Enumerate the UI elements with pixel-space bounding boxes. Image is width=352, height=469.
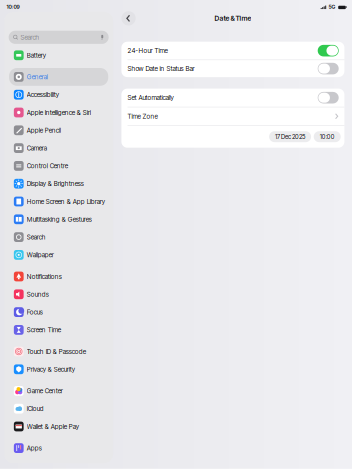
staticText: Control Centre	[27, 162, 68, 170]
button[interactable]: Multitasking & Gestures	[9, 210, 108, 228]
button[interactable]: Focus	[9, 303, 108, 321]
button[interactable]: 10:00	[314, 131, 341, 142]
button[interactable]: Apple Pencil	[9, 121, 108, 139]
button[interactable]: Privacy & Security	[9, 360, 108, 378]
staticText: Apple Pencil	[27, 126, 61, 134]
button[interactable]: 17 Dec 2025	[269, 131, 311, 142]
staticText: 10:09	[6, 4, 19, 10]
staticText: Home Screen & App Library	[27, 197, 105, 205]
staticText: Set Automatically	[127, 94, 173, 102]
staticText: Touch ID & Passcode	[27, 347, 86, 355]
button[interactable]: Set Automatically	[121, 89, 344, 107]
button[interactable]: Camera	[9, 139, 108, 157]
staticText: Show Date in Status Bar	[127, 65, 194, 72]
staticText: Multitasking & Gestures	[27, 215, 92, 223]
button[interactable]: Display & Brightness	[9, 175, 108, 193]
button[interactable]: Time Zone	[121, 107, 344, 125]
staticText: Time Zone	[127, 112, 157, 120]
button[interactable]: Battery	[9, 46, 108, 64]
button[interactable]: Sounds	[9, 285, 108, 303]
button[interactable]: General	[9, 68, 108, 86]
button[interactable]: Show Date in Status Bar	[121, 60, 344, 77]
button[interactable]: Game Center	[9, 382, 108, 400]
staticText: Battery	[27, 51, 46, 59]
staticText: Sounds	[27, 290, 49, 298]
staticText: Notifications	[27, 272, 62, 280]
staticText: Focus	[27, 308, 43, 316]
button[interactable]: Home Screen & App Library	[9, 193, 108, 210]
staticText: 5G	[328, 4, 335, 10]
button[interactable]: Accessibility	[9, 86, 108, 104]
button[interactable]: Apps	[9, 439, 108, 457]
staticText: 17 Dec 2025	[275, 133, 305, 140]
button[interactable]: Wallet & Apple Pay	[9, 418, 108, 435]
staticText: Display & Brightness	[27, 180, 84, 188]
button[interactable]: 24-Hour Time	[121, 42, 344, 60]
staticText: Privacy & Security	[27, 365, 75, 373]
staticText: Date & Time	[214, 14, 251, 23]
button[interactable]: Back	[121, 11, 136, 25]
button[interactable]: Apple Intelligence & Siri	[9, 104, 108, 121]
staticText: Search	[20, 33, 39, 41]
staticText: Camera	[27, 144, 47, 152]
staticText: Wallpaper	[27, 251, 54, 259]
staticText: Game Center	[27, 387, 63, 395]
button[interactable]: Notifications	[9, 268, 108, 285]
staticText: Accessibility	[27, 91, 59, 99]
staticText: Screen Time	[27, 326, 61, 334]
staticText: Wallet & Apple Pay	[27, 422, 79, 430]
staticText: iCloud	[27, 405, 44, 413]
staticText: Apps	[27, 444, 42, 452]
staticText: 10:00	[320, 133, 335, 140]
button[interactable]: Wallpaper	[9, 246, 108, 264]
button[interactable]: iCloud	[9, 400, 108, 418]
staticText: 24-Hour Time	[127, 47, 167, 55]
button[interactable]: Screen Time	[9, 321, 108, 339]
button[interactable]: Control Centre	[9, 157, 108, 175]
staticText: General	[27, 73, 48, 81]
button[interactable]: Touch ID & Passcode	[9, 343, 108, 360]
staticText: Search	[27, 233, 46, 241]
staticText: Apple Intelligence & Siri	[27, 108, 91, 116]
button[interactable]: Search	[9, 228, 108, 246]
